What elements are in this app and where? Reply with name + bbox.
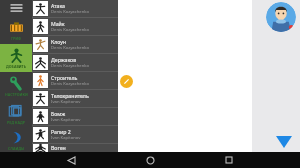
staticText: Ivan Kapitonov — [51, 99, 81, 105]
button[interactable]: Expand — [276, 136, 292, 148]
staticText: Телохранитель — [51, 92, 89, 99]
button[interactable]: Menu — [0, 0, 32, 16]
staticText: ДОБАВИТЬ — [6, 64, 27, 69]
staticText: Воген — [51, 144, 66, 151]
button[interactable]: Строитель — [32, 72, 118, 89]
button[interactable]: ГРИФ — [0, 16, 32, 44]
staticText: Denis Kozyachenko — [51, 81, 90, 87]
button[interactable]: Edit — [120, 75, 133, 88]
button[interactable]: Home — [142, 152, 158, 168]
button[interactable]: СЛАЙДЫ — [0, 128, 32, 152]
button[interactable]: Клоун — [32, 36, 118, 53]
staticText: РЕД КАДР — [7, 120, 25, 125]
staticText: Ivan Kapitonov — [51, 135, 81, 141]
staticText: Клоун — [51, 38, 67, 45]
button[interactable]: РЕД КАДР — [0, 100, 32, 128]
button[interactable]: Бомж — [32, 108, 118, 125]
staticText: Майк — [51, 20, 65, 27]
button[interactable]: ДОБАВИТЬ — [0, 44, 32, 72]
staticText: Бомж — [51, 110, 66, 117]
staticText: ГРИФ — [11, 36, 22, 41]
staticText: Атака — [51, 2, 65, 9]
staticText: НАСТРОЙКИ — [5, 92, 28, 97]
button[interactable]: Телохранитель — [32, 90, 118, 107]
button[interactable]: Воген — [32, 144, 118, 152]
staticText: Denis Kozyachenko — [51, 45, 90, 51]
button[interactable]: Profile — [266, 2, 296, 32]
button[interactable]: НАСТРОЙКИ — [0, 72, 32, 100]
button[interactable]: Атака — [32, 0, 118, 17]
staticText: Строитель — [51, 74, 78, 81]
staticText: Держаков — [51, 56, 77, 63]
staticText: Рапир 2 — [51, 128, 71, 135]
button[interactable] — [118, 0, 252, 152]
button[interactable]: Держаков — [32, 54, 118, 71]
staticText: Denis Kozyachenko — [51, 63, 90, 69]
staticText: Ivan Kapitonov — [51, 117, 81, 123]
staticText: Denis Kozyachenko — [51, 9, 90, 15]
button[interactable]: Рапир 2 — [32, 126, 118, 143]
staticText: Denis Kozyachenko — [51, 27, 90, 33]
staticText: СЛАЙДЫ — [8, 146, 25, 151]
button[interactable]: Back — [63, 152, 79, 168]
button[interactable]: Майк — [32, 18, 118, 35]
button[interactable]: Recents — [221, 152, 237, 168]
